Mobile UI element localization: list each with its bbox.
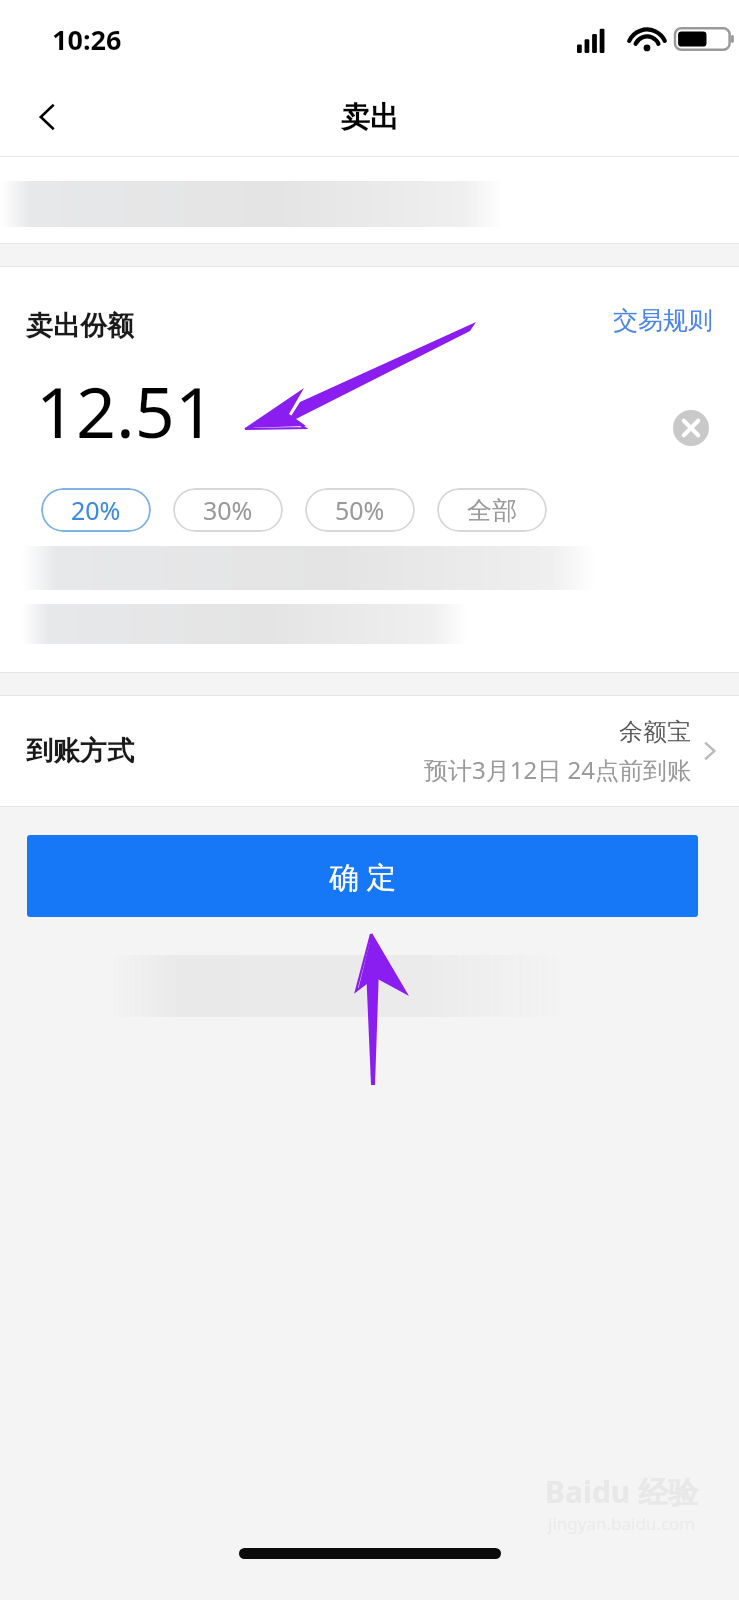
button[interactable]: 30% — [173, 488, 283, 532]
staticText: 12.51 — [36, 363, 215, 458]
button[interactable]: 确 定 — [27, 835, 698, 917]
staticText: 卖出份额 — [26, 309, 134, 343]
button[interactable]: Back — [0, 78, 96, 156]
staticText: 50% — [335, 493, 385, 527]
staticText: 到账方式 — [26, 734, 134, 768]
staticText: 全部 — [467, 495, 517, 526]
button[interactable]: 交易规则 — [605, 293, 721, 348]
staticText: 余额宝 — [619, 717, 691, 747]
button[interactable]: Clear — [673, 410, 709, 446]
staticText: 交易规则 — [613, 305, 713, 336]
button[interactable]: 50% — [305, 488, 415, 532]
staticText: 10:26 — [52, 21, 122, 58]
staticText: 卖出 — [341, 99, 399, 136]
staticText: 30% — [203, 493, 253, 527]
button[interactable]: 全部 — [437, 488, 547, 532]
button[interactable]: 到账方式 — [0, 696, 739, 806]
staticText: 预计3月12日 24点前到账 — [424, 753, 691, 786]
staticText: jingyan.baidu.com — [548, 1512, 696, 1535]
staticText: 确 定 — [329, 856, 397, 897]
staticText: Baidu 经验 — [545, 1471, 699, 1512]
staticText: 20% — [71, 493, 121, 527]
button[interactable]: 20% — [41, 488, 151, 532]
